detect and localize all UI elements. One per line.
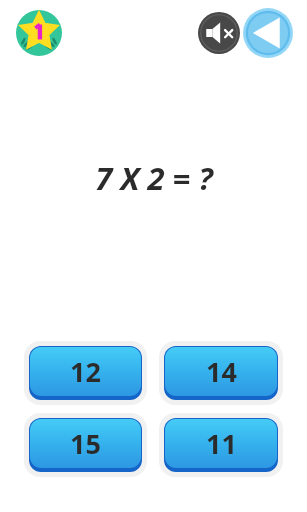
button[interactable]: Mute sound (198, 12, 240, 54)
staticText: 14 (206, 353, 237, 390)
button[interactable]: 14 (159, 341, 283, 405)
staticText: 11 (206, 425, 237, 462)
staticText: 15 (70, 425, 101, 462)
button[interactable]: 12 (24, 341, 147, 405)
staticText: 12 (70, 353, 101, 390)
button[interactable]: Level 1 badge (16, 10, 62, 56)
button[interactable]: 15 (24, 413, 147, 477)
staticText: 7 X 2 = ? (95, 157, 213, 199)
button[interactable]: Back (243, 8, 293, 58)
button[interactable]: 11 (159, 413, 283, 477)
